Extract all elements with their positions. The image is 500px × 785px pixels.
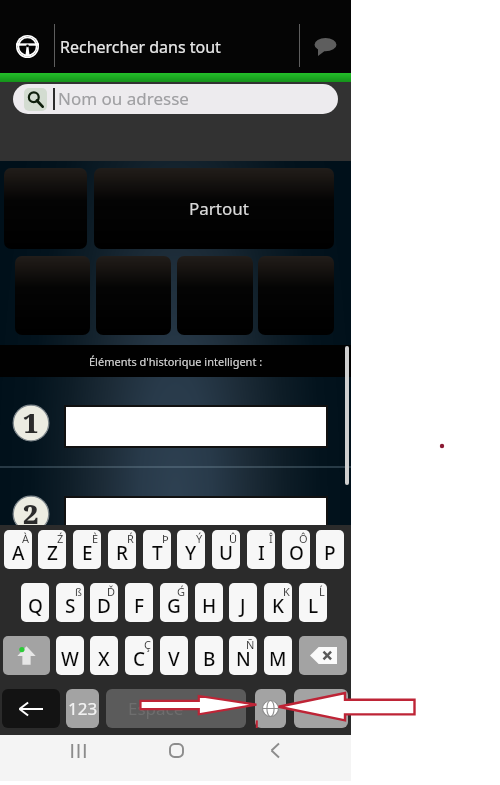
button[interactable]: X [90,636,118,675]
staticText: Ź [57,531,64,546]
button[interactable]: V [160,636,188,675]
staticText: X [98,646,110,672]
button[interactable]: R [108,530,136,569]
staticText: B [203,646,216,672]
staticText: R [116,540,129,566]
button[interactable]: Maj [3,636,50,675]
staticText: Î [269,531,273,546]
staticText: P [324,540,336,566]
button[interactable]: Mode conduite [0,0,55,73]
button[interactable]: F [125,583,153,622]
button[interactable]: H [195,583,223,622]
button[interactable]: Rechercher dans tout [55,0,299,73]
staticText: Q [28,593,43,619]
button[interactable]: T [143,530,171,569]
staticText: W [61,646,79,672]
button[interactable]: Changer de langue [255,689,286,728]
staticText: Ŕ [127,531,134,546]
staticText: N [236,646,251,672]
staticText: O [289,540,304,566]
staticText: Þ [162,531,169,546]
staticText: Ď [107,584,116,599]
button[interactable] [15,256,90,335]
staticText: E [82,540,93,566]
button[interactable]: O [282,530,310,569]
button[interactable]: G [160,583,188,622]
button[interactable]: Applications récentes [58,735,98,766]
staticText: Z [47,540,58,566]
staticText: 1 [23,404,39,441]
button[interactable]: J [229,583,257,622]
staticText: 123 [68,697,98,720]
button[interactable]: P [316,530,344,569]
staticText: À [22,531,30,546]
staticText: Ñ [246,637,255,652]
button[interactable]: Nom ou adresse [13,84,338,114]
staticText: D [97,593,111,619]
button[interactable]: Partout [94,168,334,249]
staticText: È [92,531,99,546]
staticText: Ý [196,531,203,546]
button[interactable] [177,256,253,335]
staticText: Ô [299,531,308,546]
button[interactable]: B [195,636,223,675]
staticText: G [167,593,181,619]
button[interactable] [258,256,334,335]
staticText: ß [75,584,82,599]
staticText: I [258,540,265,566]
button[interactable]: 123 [66,689,99,728]
button[interactable]: I [247,530,275,569]
staticText: U [219,540,234,566]
staticText: Ç [144,637,151,652]
button[interactable]: D [90,583,118,622]
staticText: M [269,646,287,672]
button[interactable]: Z [38,530,66,569]
button[interactable]: 1 [0,377,351,467]
staticText: L [308,593,319,619]
button[interactable]: Espace [106,689,246,728]
staticText: Y [185,540,197,566]
button[interactable]: Entrée [294,689,348,728]
button[interactable] [4,168,87,249]
button[interactable]: E [73,530,101,569]
button[interactable]: M [264,636,292,675]
button[interactable]: S [56,583,84,622]
button[interactable]: A [4,530,32,569]
button[interactable]: 2 [0,468,351,528]
staticText: Rechercher dans tout [60,36,221,58]
button[interactable]: K [264,583,292,622]
staticText: Ĺ [319,584,325,599]
staticText: H [202,593,217,619]
staticText: K [272,593,285,619]
staticText: Nom ou adresse [58,87,189,110]
staticText: S [65,593,76,619]
staticText: T [152,540,163,566]
button[interactable]: Q [21,583,49,622]
staticText: Partout [189,197,249,220]
button[interactable]: Accueil [156,735,196,766]
staticText: V [168,646,180,672]
staticText: K [283,584,290,599]
button[interactable]: Messages [300,0,351,73]
staticText: C [133,646,146,672]
button[interactable]: W [56,636,84,675]
button[interactable]: L [299,583,327,622]
button[interactable]: Y [177,530,205,569]
button[interactable]: Retour [255,735,295,766]
button[interactable] [96,256,171,335]
button[interactable]: Fermer le clavier [2,689,60,728]
button[interactable]: Retour arrière [299,636,347,675]
staticText: A [12,540,25,566]
button[interactable]: C [125,636,153,675]
staticText: Ǵ [177,584,186,599]
button[interactable]: U [212,530,240,569]
staticText: Û [229,531,238,546]
staticText: Éléments d'historique intelligent : [89,354,263,369]
button[interactable]: N [229,636,257,675]
staticText: 2 [23,495,39,532]
staticText: Espace [128,697,184,720]
staticText: F [134,593,145,619]
staticText: J [240,593,246,619]
